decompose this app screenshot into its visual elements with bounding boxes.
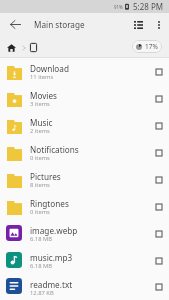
button[interactable]: Select Ringtones xyxy=(151,199,167,215)
staticText: 0 items xyxy=(30,154,50,162)
button[interactable]: Select readme.txt xyxy=(151,279,167,295)
staticText: Ringtones xyxy=(30,198,69,209)
staticText: Pictures xyxy=(30,171,61,182)
staticText: 0 items xyxy=(30,208,50,216)
staticText: readme.txt xyxy=(30,279,73,290)
button[interactable]: music.mp3 xyxy=(0,247,169,274)
staticText: 6.18 MB xyxy=(30,262,53,270)
button[interactable]: Ringtones xyxy=(0,193,169,220)
button[interactable]: Select image.webp xyxy=(151,226,167,242)
staticText: 5:28 PM xyxy=(133,1,164,12)
button[interactable]: Select Music xyxy=(151,118,167,134)
button[interactable]: Movies xyxy=(0,85,169,112)
button[interactable]: Select Movies xyxy=(151,91,167,107)
staticText: Notifications xyxy=(30,144,79,155)
button[interactable]: Select Download xyxy=(151,64,167,80)
button[interactable]: Pictures xyxy=(0,166,169,193)
staticText: 11 items xyxy=(30,73,54,81)
staticText: 8 items xyxy=(30,181,50,189)
button[interactable]: readme.txt xyxy=(0,274,169,300)
staticText: 3 items xyxy=(30,100,50,108)
staticText: Movies xyxy=(30,90,58,101)
button[interactable]: Music xyxy=(0,112,169,139)
staticText: Download xyxy=(30,63,69,74)
button[interactable]: 17% xyxy=(132,40,162,53)
staticText: Main storage xyxy=(34,19,85,30)
staticText: 17% xyxy=(145,42,158,51)
staticText: Music xyxy=(30,117,53,128)
staticText: 6.18 MB xyxy=(30,235,53,243)
button[interactable]: Select music.mp3 xyxy=(151,253,167,269)
button[interactable]: Switch view xyxy=(127,14,149,36)
button[interactable]: Back xyxy=(0,13,31,36)
staticText: 12.87 KB xyxy=(30,289,54,297)
button[interactable]: Home xyxy=(3,39,20,56)
staticText: 2 items xyxy=(30,127,50,135)
button[interactable]: image.webp xyxy=(0,220,169,247)
button[interactable]: Select Notifications xyxy=(151,145,167,161)
button[interactable]: Download xyxy=(0,58,169,85)
button[interactable]: Select Pictures xyxy=(151,172,167,188)
button[interactable]: More options xyxy=(149,15,169,35)
staticText: 91% xyxy=(114,4,123,10)
staticText: image.webp xyxy=(30,225,78,236)
button[interactable]: Notifications xyxy=(0,139,169,166)
staticText: music.mp3 xyxy=(30,252,73,263)
button[interactable]: Device storage xyxy=(27,41,40,54)
